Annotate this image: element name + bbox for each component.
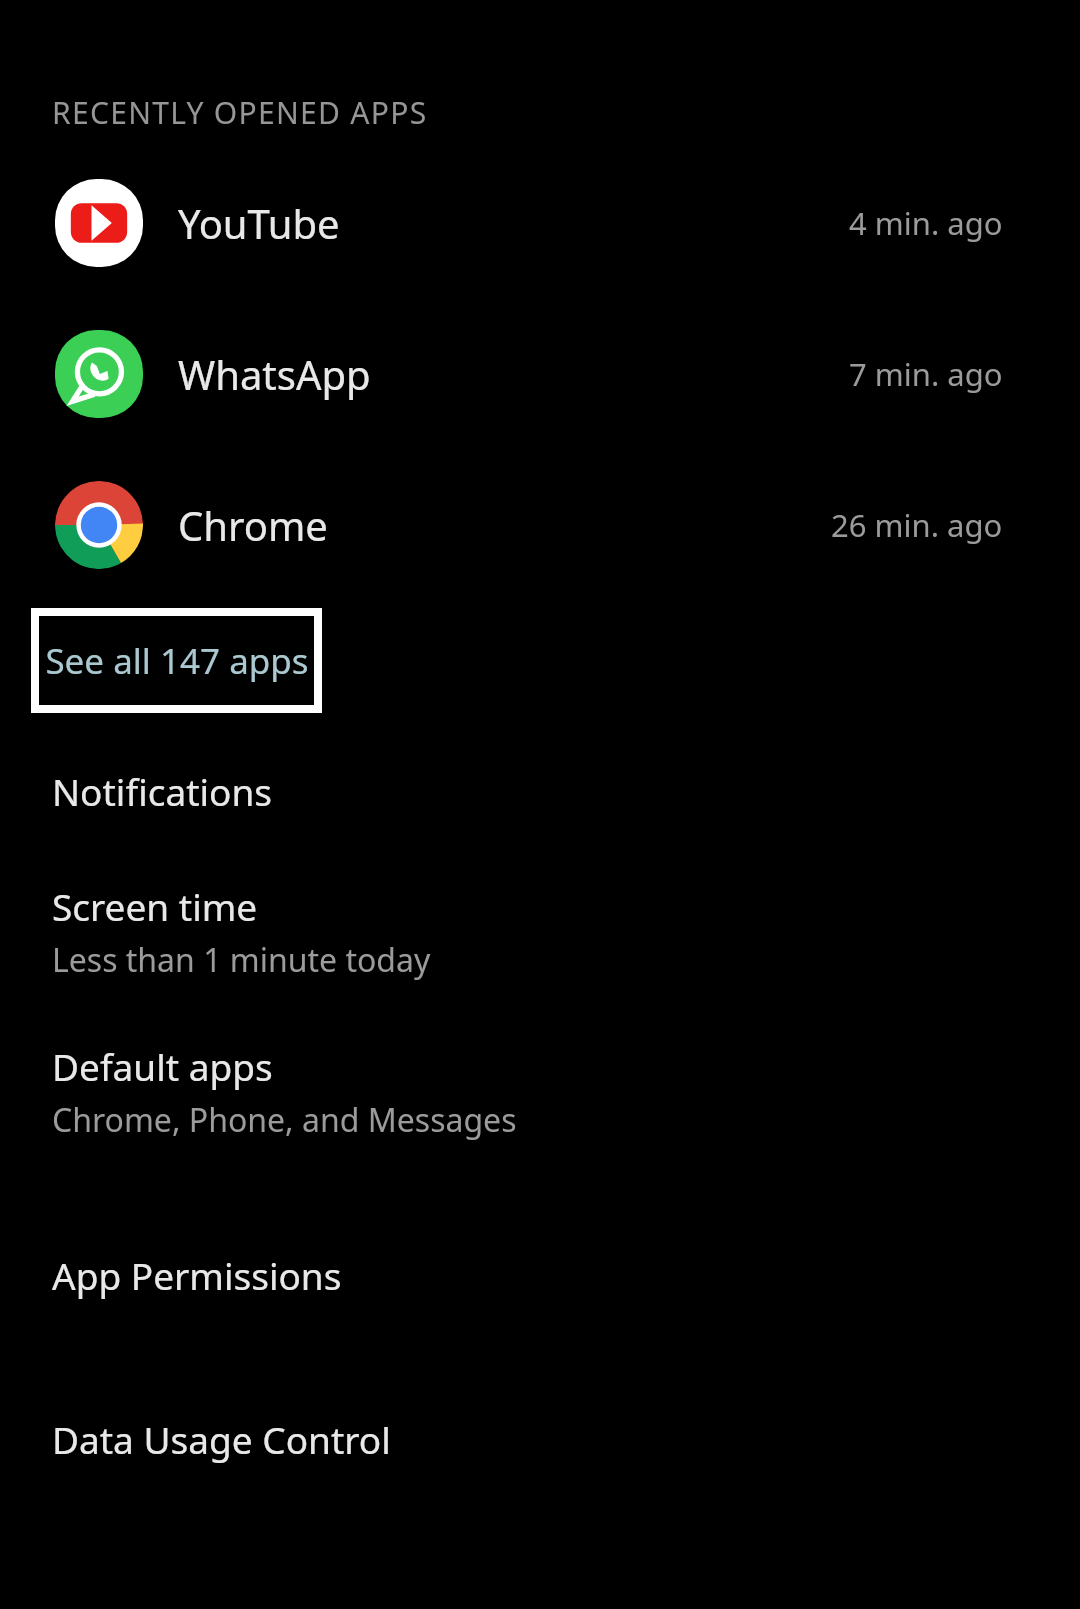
button[interactable]: See all 147 apps xyxy=(39,616,314,705)
staticText: Chrome, Phone, and Messages xyxy=(52,1098,517,1142)
button[interactable]: Screen time xyxy=(0,875,1080,987)
button[interactable]: Data Usage Control xyxy=(0,1383,1080,1495)
staticText: Default apps xyxy=(52,1041,273,1091)
staticText: 7 min. ago xyxy=(849,353,1003,395)
staticText: RECENTLY OPENED APPS xyxy=(52,92,428,133)
button[interactable]: Chrome xyxy=(0,449,1080,600)
staticText: Less than 1 minute today xyxy=(52,938,431,982)
button[interactable]: App Permissions xyxy=(0,1219,1080,1331)
staticText: Notifications xyxy=(52,766,273,816)
staticText: YouTube xyxy=(178,196,340,250)
other: Chrome xyxy=(55,481,143,569)
staticText: See all 147 apps xyxy=(45,637,309,685)
button[interactable]: Notifications xyxy=(0,735,1080,847)
button[interactable]: Default apps xyxy=(0,1035,1080,1147)
other: WhatsApp xyxy=(55,330,143,418)
staticText: 4 min. ago xyxy=(849,202,1003,244)
staticText: Chrome xyxy=(178,498,328,552)
staticText: App Permissions xyxy=(52,1250,342,1300)
staticText: 26 min. ago xyxy=(831,504,1003,546)
button[interactable]: WhatsApp xyxy=(0,298,1080,449)
other: YouTube xyxy=(55,179,143,267)
staticText: Screen time xyxy=(52,881,258,931)
staticText: Data Usage Control xyxy=(52,1414,391,1464)
button[interactable]: YouTube xyxy=(0,147,1080,298)
staticText: WhatsApp xyxy=(178,347,371,401)
